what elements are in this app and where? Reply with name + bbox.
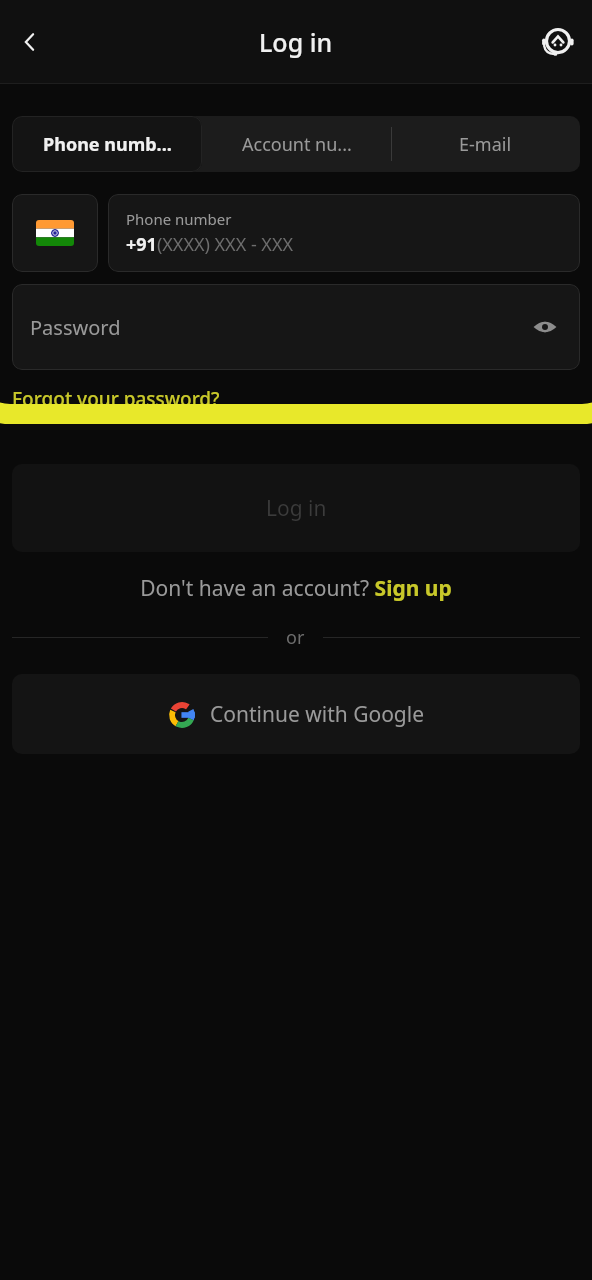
- button[interactable]: Account nu...: [202, 116, 391, 172]
- staticText: Account nu...: [242, 132, 352, 157]
- staticText: Forgot your password?: [12, 386, 220, 412]
- staticText: Phone numb...: [43, 132, 172, 157]
- staticText: Password: [30, 314, 121, 341]
- staticText: Don't have an account? Sign up: [140, 574, 452, 603]
- button[interactable]: Forgot your password?: [12, 382, 220, 416]
- staticText: or: [286, 625, 305, 650]
- button[interactable]: Phone numb...: [12, 116, 202, 172]
- staticText: Phone number: [126, 209, 232, 229]
- button[interactable]: Support: [534, 18, 582, 66]
- staticText: Log in: [259, 25, 333, 59]
- staticText: Continue with Google: [210, 700, 425, 729]
- staticText: E-mail: [459, 132, 512, 157]
- button[interactable]: Select country code: [12, 194, 98, 272]
- button[interactable]: Password: [12, 284, 580, 370]
- button[interactable]: Continue with Google: [12, 674, 580, 754]
- staticText: +91(XXXX) XXX - XXX: [126, 232, 294, 257]
- staticText: Log in: [266, 494, 327, 523]
- button[interactable]: Don't have an account? Sign up: [0, 574, 592, 603]
- button[interactable]: Phone number: [108, 194, 580, 272]
- button[interactable]: E-mail: [391, 116, 580, 172]
- button[interactable]: Back: [6, 18, 54, 66]
- button[interactable]: Show password: [522, 304, 568, 350]
